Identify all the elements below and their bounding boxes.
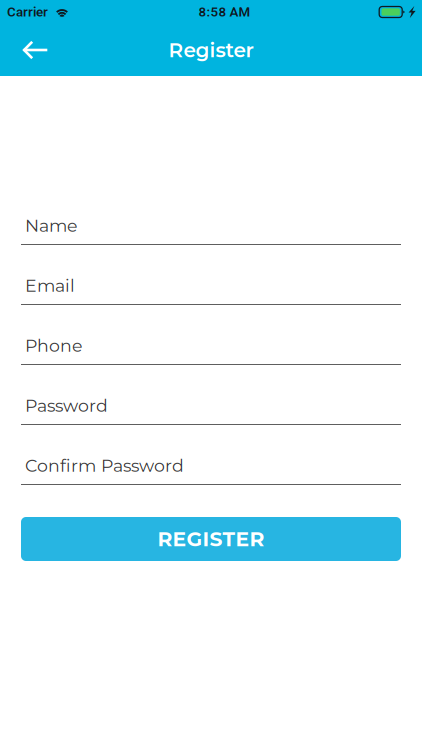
staticText: Register bbox=[168, 38, 253, 62]
button[interactable]: Name bbox=[21, 215, 401, 236]
button[interactable]: REGISTER bbox=[21, 517, 401, 561]
button[interactable]: Phone bbox=[21, 335, 401, 356]
button[interactable]: Email bbox=[21, 275, 401, 296]
staticText: Email bbox=[25, 275, 75, 296]
button[interactable]: Password bbox=[21, 395, 401, 416]
staticText: Confirm Password bbox=[25, 455, 184, 476]
staticText: Phone bbox=[25, 335, 82, 356]
staticText: Password bbox=[25, 395, 108, 416]
staticText: 8:58 AM bbox=[199, 4, 251, 20]
staticText: Name bbox=[25, 215, 77, 236]
staticText: Carrier bbox=[7, 4, 48, 20]
button[interactable]: Confirm Password bbox=[21, 455, 401, 476]
button[interactable]: Back bbox=[12, 26, 59, 73]
staticText: REGISTER bbox=[157, 527, 264, 551]
